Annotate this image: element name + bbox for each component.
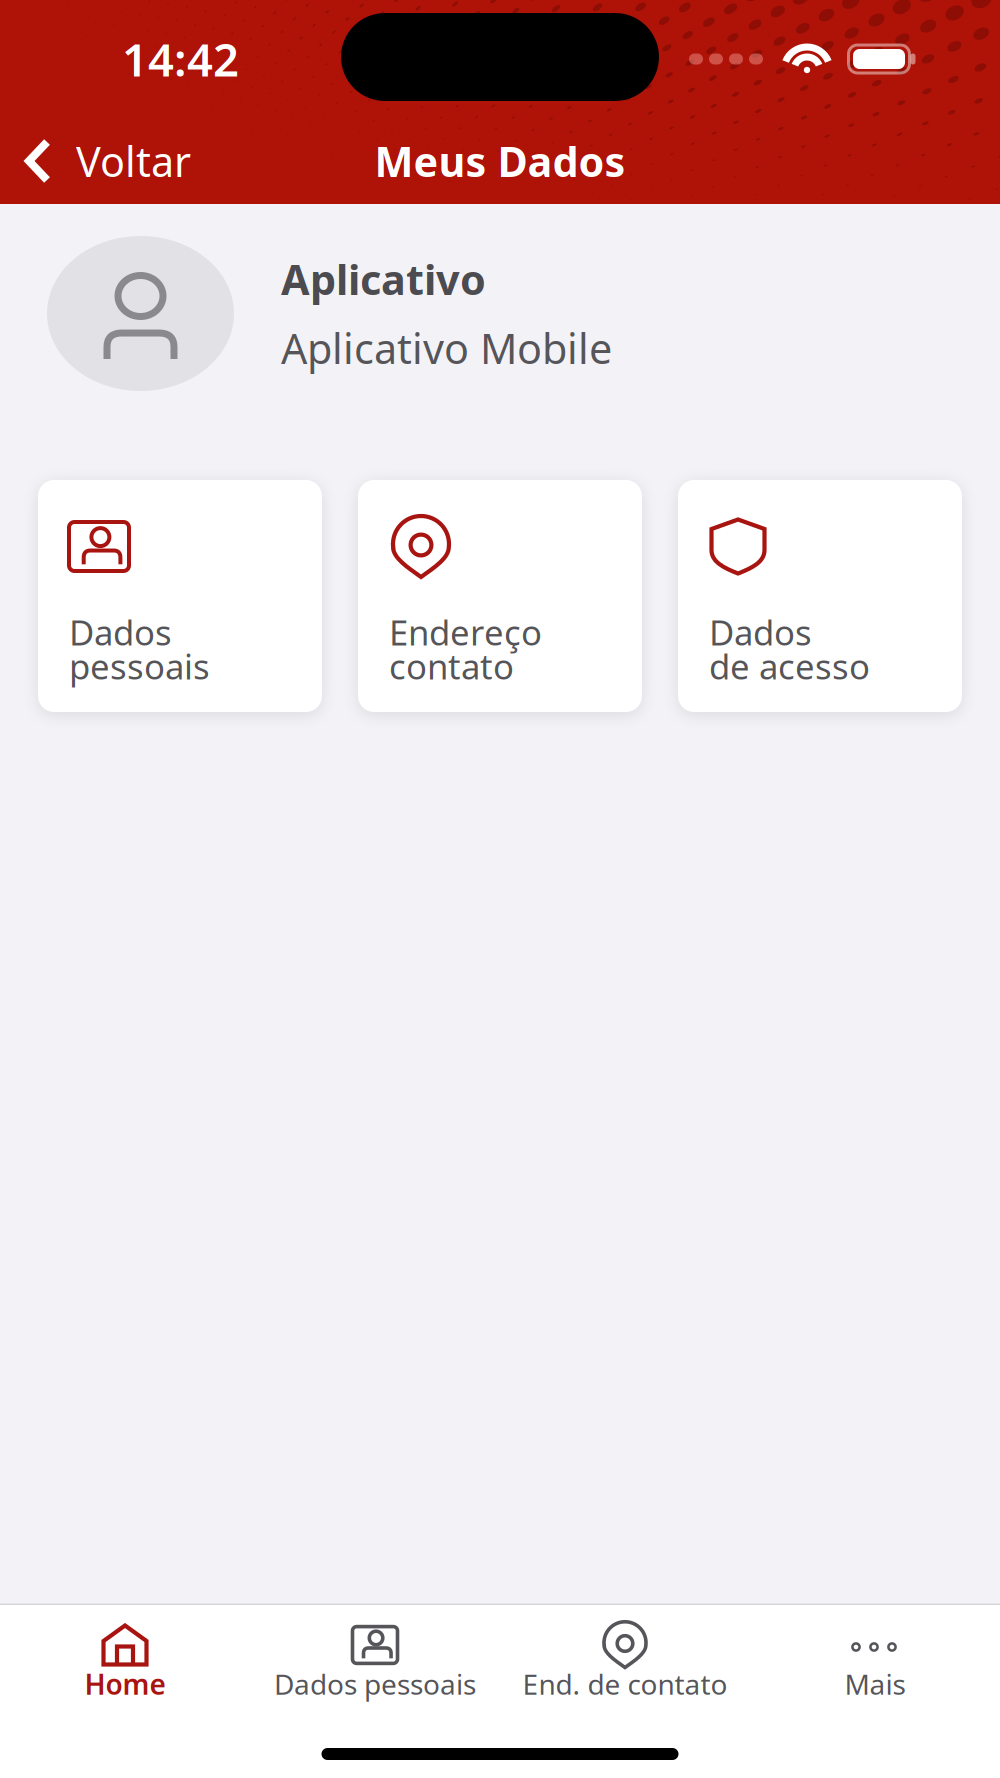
button[interactable]: Voltar — [0, 124, 209, 198]
staticText: Dados pessoais — [274, 1665, 476, 1703]
staticText: Dados — [69, 609, 172, 655]
button[interactable]: Endereço — [358, 480, 642, 712]
staticText: 14:42 — [122, 29, 239, 89]
staticText: Aplicativo Mobile — [281, 320, 612, 375]
button[interactable]: Dados — [678, 480, 962, 712]
button[interactable]: Dados pessoais — [250, 1605, 500, 1701]
button[interactable]: Mais — [750, 1605, 1000, 1701]
staticText: End. de contato — [522, 1665, 727, 1703]
button[interactable]: End. de contato — [500, 1605, 750, 1701]
staticText: Endereço — [389, 609, 542, 655]
staticText: pessoais — [69, 643, 210, 689]
staticText: Home — [84, 1665, 165, 1703]
staticText: Dados — [709, 609, 812, 655]
button[interactable]: Dados — [38, 480, 322, 712]
staticText: de acesso — [709, 643, 870, 689]
staticText: Voltar — [76, 134, 191, 188]
staticText: Mais — [844, 1665, 905, 1703]
staticText: Meus Dados — [374, 134, 625, 188]
staticText: Aplicativo — [281, 252, 486, 306]
staticText: contato — [389, 643, 514, 689]
button[interactable]: Home — [0, 1605, 250, 1701]
